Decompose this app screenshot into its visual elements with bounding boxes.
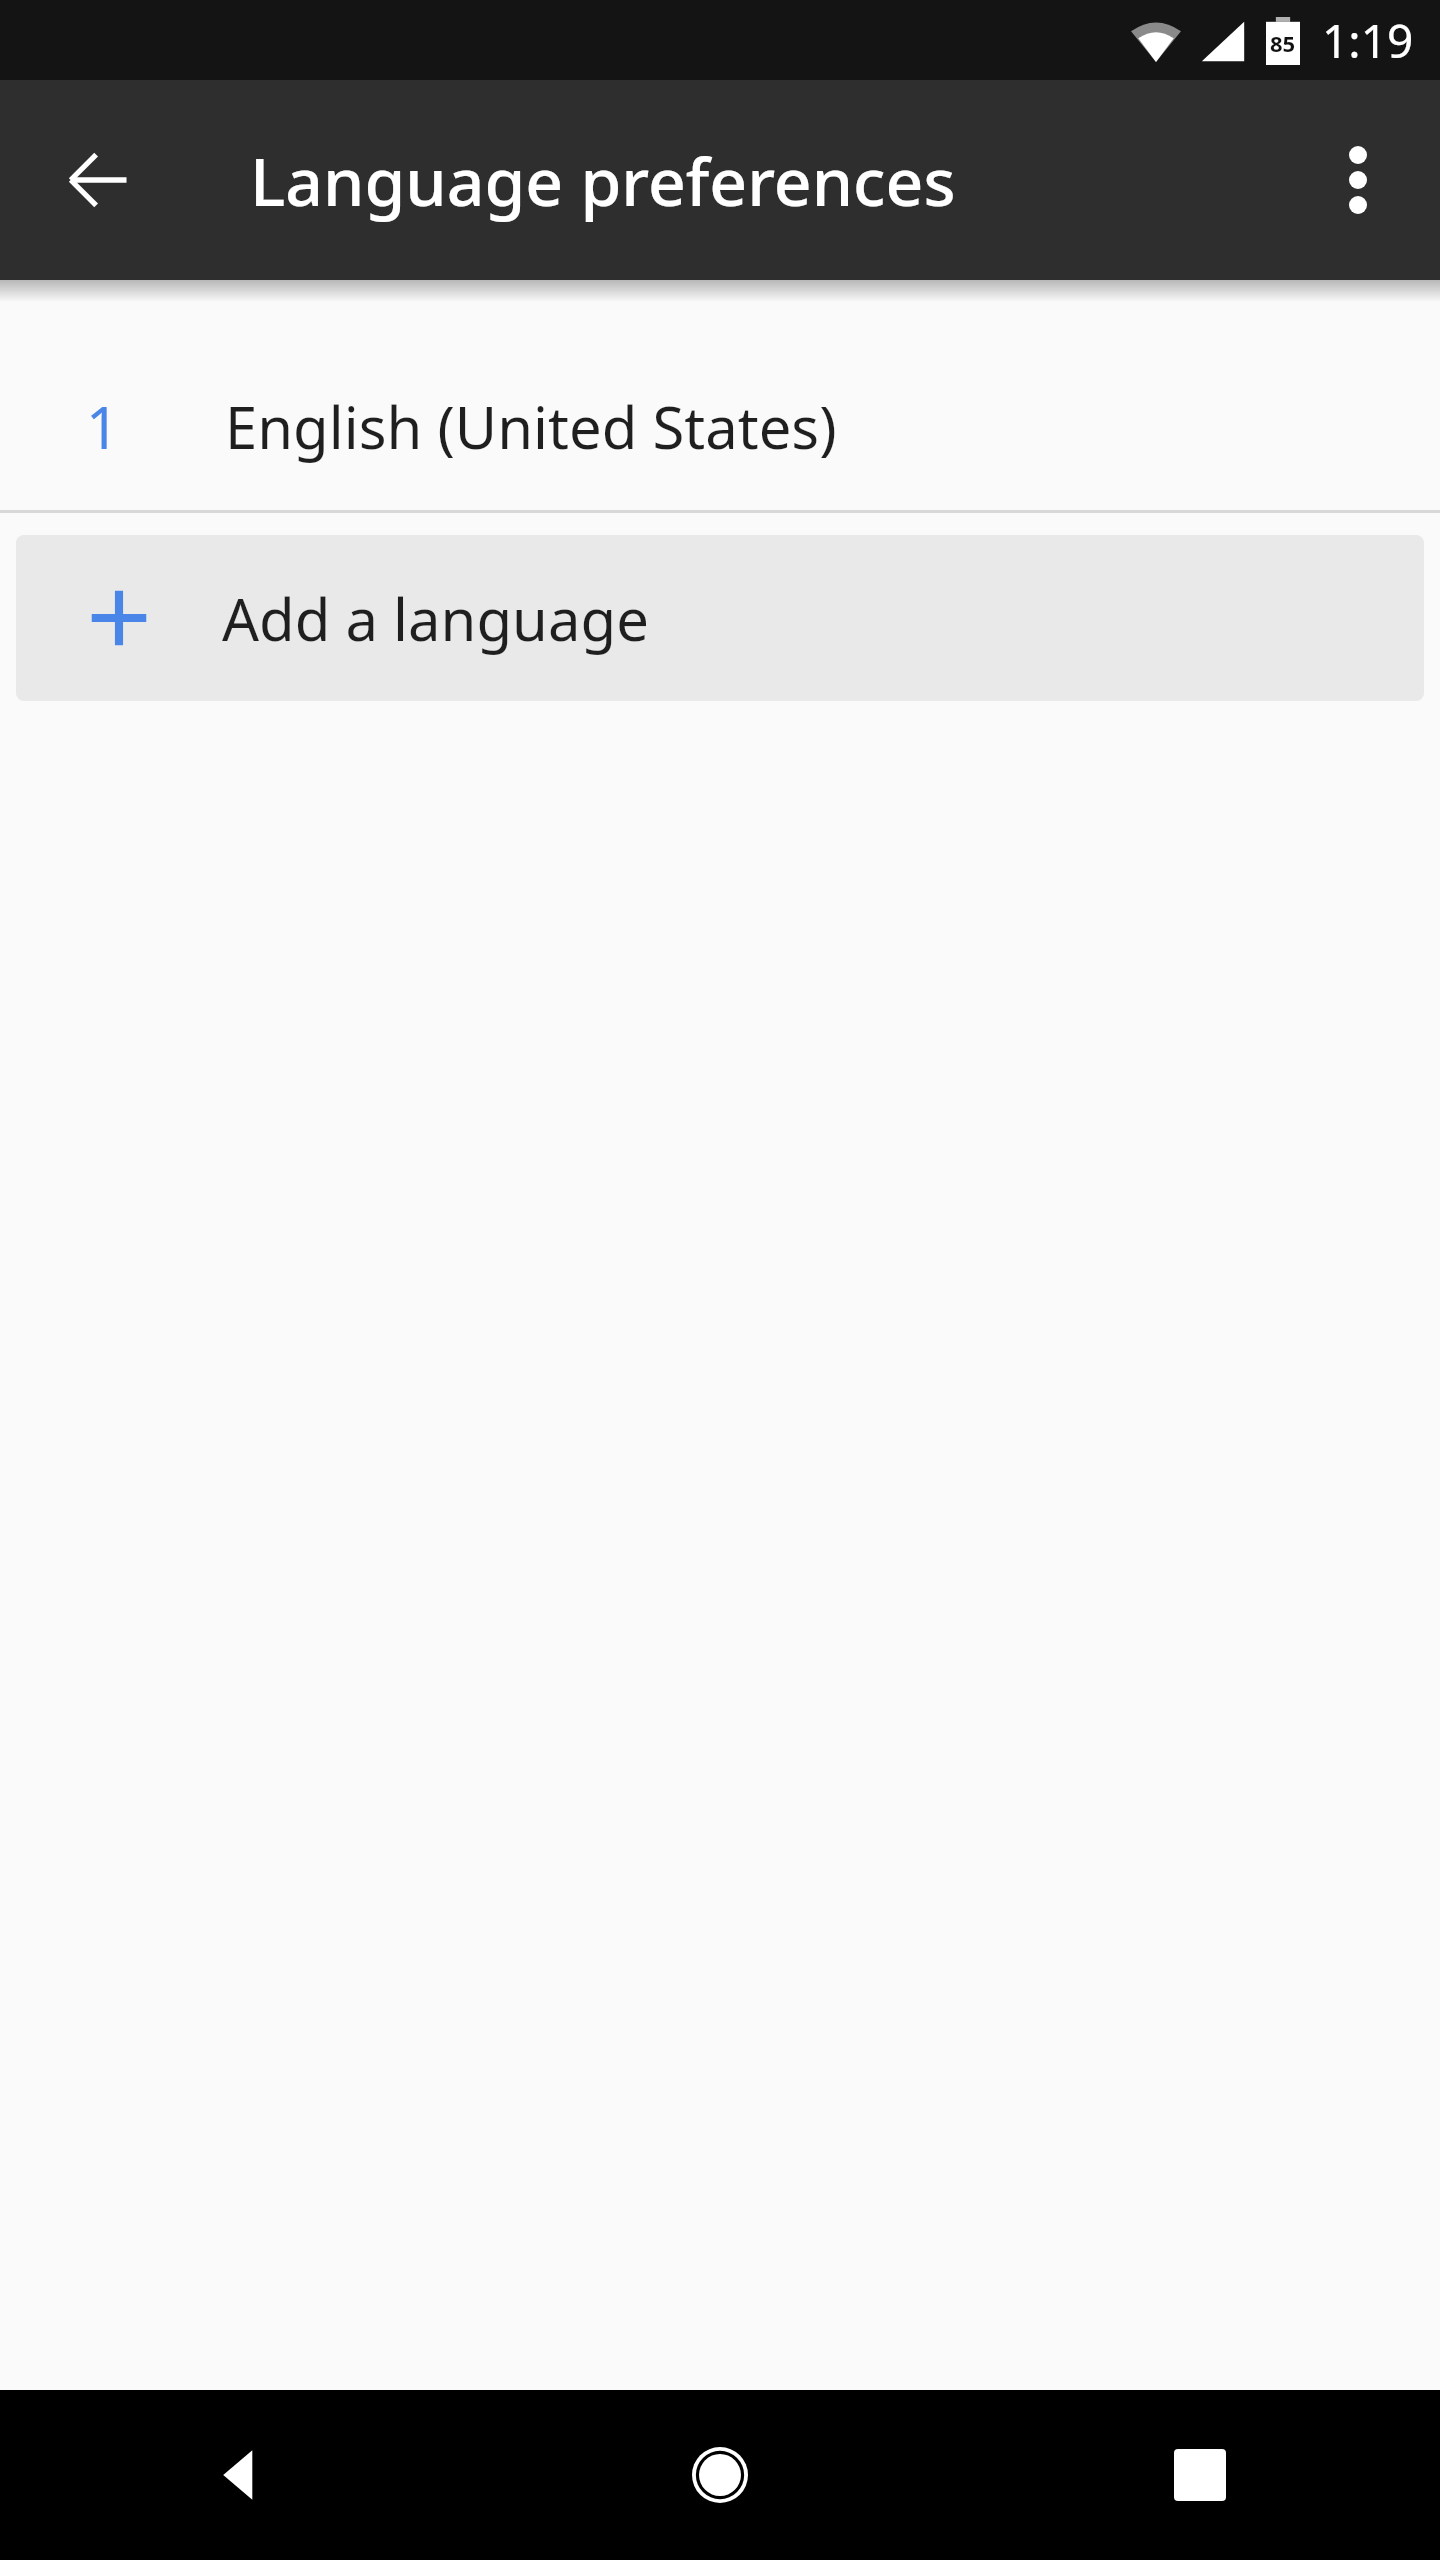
staticText: English (United States) bbox=[225, 387, 837, 466]
button[interactable]: Home bbox=[480, 2390, 960, 2560]
button[interactable]: Back bbox=[0, 2390, 480, 2560]
button[interactable]: Navigate up bbox=[34, 116, 162, 244]
staticText: 1:19 bbox=[1322, 9, 1414, 72]
button[interactable]: More options bbox=[1294, 116, 1422, 244]
button[interactable]: Recent apps bbox=[960, 2390, 1440, 2560]
staticText: Add a language bbox=[222, 579, 649, 658]
staticText: 1 bbox=[86, 387, 120, 466]
staticText: Language preferences bbox=[250, 135, 956, 225]
button[interactable]: 1 bbox=[0, 342, 1440, 510]
staticText: 85 bbox=[1270, 28, 1296, 58]
button[interactable]: Add a language bbox=[16, 535, 1424, 701]
